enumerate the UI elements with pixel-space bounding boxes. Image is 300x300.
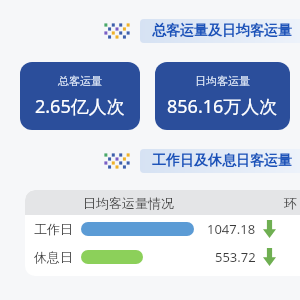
other: 装饰图案	[104, 23, 130, 39]
button[interactable]: 总客运量	[20, 62, 140, 130]
button[interactable]: 休息日	[25, 243, 300, 271]
staticText: 2.65亿人次	[35, 94, 125, 119]
staticText: 工作日及休息日客运量	[152, 152, 292, 170]
other: 装饰图案	[104, 153, 130, 169]
staticText: 553.72	[215, 248, 256, 266]
staticText: 日均客运量	[195, 74, 250, 88]
staticText: 1047.18	[207, 220, 256, 238]
button[interactable]: 装饰图案	[0, 149, 300, 173]
staticText: 工作日	[34, 221, 73, 237]
staticText: 休息日	[34, 249, 73, 265]
staticText: 环	[284, 195, 297, 211]
staticText: 总客运量	[58, 74, 102, 88]
other: 环比下降	[263, 220, 276, 238]
other: 环比下降	[263, 248, 276, 266]
button[interactable]: 日均客运量	[155, 62, 290, 130]
button[interactable]: 工作日	[25, 215, 300, 243]
staticText: 856.16万人次	[167, 94, 278, 119]
button[interactable]: 装饰图案	[0, 19, 300, 43]
staticText: 总客运量及日均客运量	[152, 22, 292, 40]
staticText: 日均客运量情况	[83, 195, 174, 211]
